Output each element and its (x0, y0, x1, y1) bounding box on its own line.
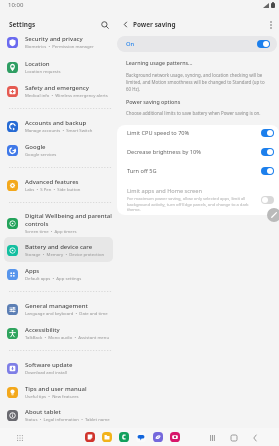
staticText: Accessibility (25, 326, 60, 334)
staticText: Labs • S Pen • Side button (25, 186, 81, 192)
staticText: Battery and device care (25, 243, 93, 251)
button[interactable]: Location (4, 54, 113, 79)
staticText: About tablet (25, 408, 61, 416)
button[interactable]: Internet (153, 432, 163, 442)
button[interactable]: Safety and emergency (4, 79, 113, 103)
button[interactable]: My Files (102, 432, 112, 442)
staticText: Turn off 5G (127, 167, 157, 175)
button[interactable]: Gallery (170, 432, 180, 442)
staticText: Limit CPU speed to 70% (127, 129, 190, 137)
button[interactable]: Edit (267, 208, 279, 222)
staticText: Default apps • App settings (25, 275, 82, 281)
staticText: Apps (25, 267, 40, 275)
staticText: Download and install (25, 369, 67, 375)
button[interactable]: Search (98, 18, 111, 31)
button[interactable]: More options (265, 19, 276, 30)
staticText: Settings (9, 20, 36, 29)
button[interactable]: All apps (14, 432, 25, 443)
button[interactable]: Toggle (257, 40, 270, 48)
button[interactable]: Home (228, 432, 239, 443)
button[interactable]: Phone (119, 432, 129, 442)
staticText: Biometrics • Permission manager (25, 43, 94, 49)
staticText: Location (25, 60, 50, 68)
staticText: Accounts and backup (25, 119, 87, 127)
staticText: Google services (25, 151, 57, 157)
button[interactable]: Accessibility (4, 321, 113, 345)
staticText: Screen time • App timers (25, 228, 77, 234)
staticText: Google (25, 143, 46, 151)
staticText: Advanced features (25, 178, 79, 186)
button[interactable]: Digital Wellbeing and parental controls (4, 208, 113, 237)
button[interactable]: On (117, 36, 277, 52)
staticText: Language and keyboard • Date and time (25, 310, 108, 316)
button[interactable]: Messages (136, 432, 146, 442)
staticText: Digital Wellbeing and parental controls (25, 212, 113, 228)
button[interactable]: Advanced features (4, 173, 113, 197)
staticText: Safety and emergency (25, 84, 89, 92)
button[interactable]: Tips and user manual (4, 380, 113, 404)
button[interactable]: Limit CPU speed to 70% (117, 125, 279, 144)
button[interactable]: Back (249, 432, 260, 443)
button[interactable]: Accounts and backup (4, 114, 113, 138)
staticText: Limit apps and Home screen (127, 187, 202, 195)
button[interactable]: Limit apps and Home screen (117, 183, 279, 214)
staticText: Software update (25, 361, 73, 369)
staticText: Power saving options (126, 98, 181, 105)
staticText: On (126, 40, 135, 48)
button[interactable]: Apps (4, 262, 113, 286)
staticText: Medical info • Wireless emergency alerts (25, 92, 108, 98)
button[interactable]: Security and privacy (4, 30, 113, 54)
button[interactable]: Toggle (261, 167, 274, 175)
staticText: TalkBack • Mono audio • Assistant menu (25, 334, 110, 340)
staticText: Status • Legal information • Tablet name (25, 416, 110, 422)
staticText: Location requests (25, 68, 61, 74)
button[interactable]: Toggle (261, 196, 274, 204)
button[interactable]: Back (119, 18, 131, 30)
button[interactable]: General management (4, 297, 113, 321)
staticText: Security and privacy (25, 35, 83, 43)
staticText: Background network usage, syncing, and l… (126, 72, 270, 92)
button[interactable]: About tablet (4, 404, 113, 426)
button[interactable]: Recents (207, 432, 218, 443)
staticText: Tips and user manual (25, 385, 87, 393)
staticText: Choose additional limits to save battery… (126, 110, 261, 116)
button[interactable]: Toggle (261, 148, 274, 156)
button[interactable]: Software update (4, 356, 113, 380)
staticText: Useful tips • New features (25, 393, 79, 399)
button[interactable]: Battery and device care (4, 237, 113, 262)
staticText: General management (25, 302, 88, 310)
button[interactable]: Google (4, 138, 113, 162)
staticText: For maximum power saving, allow only sel… (127, 196, 256, 212)
staticText: Storage • Memory • Device protection (25, 251, 105, 257)
staticText: Manage accounts • Smart Switch (25, 127, 93, 133)
staticText: 10:00 (8, 1, 24, 9)
button[interactable]: Toggle (261, 129, 274, 137)
staticText: Decrease brightness by 10% (127, 148, 201, 156)
staticText: Power saving (133, 20, 176, 29)
button[interactable]: Decrease brightness by 10% (117, 144, 279, 163)
staticText: Learning usage patterns... (126, 59, 193, 66)
button[interactable]: Notes (85, 432, 95, 442)
button[interactable]: Turn off 5G (117, 163, 279, 183)
